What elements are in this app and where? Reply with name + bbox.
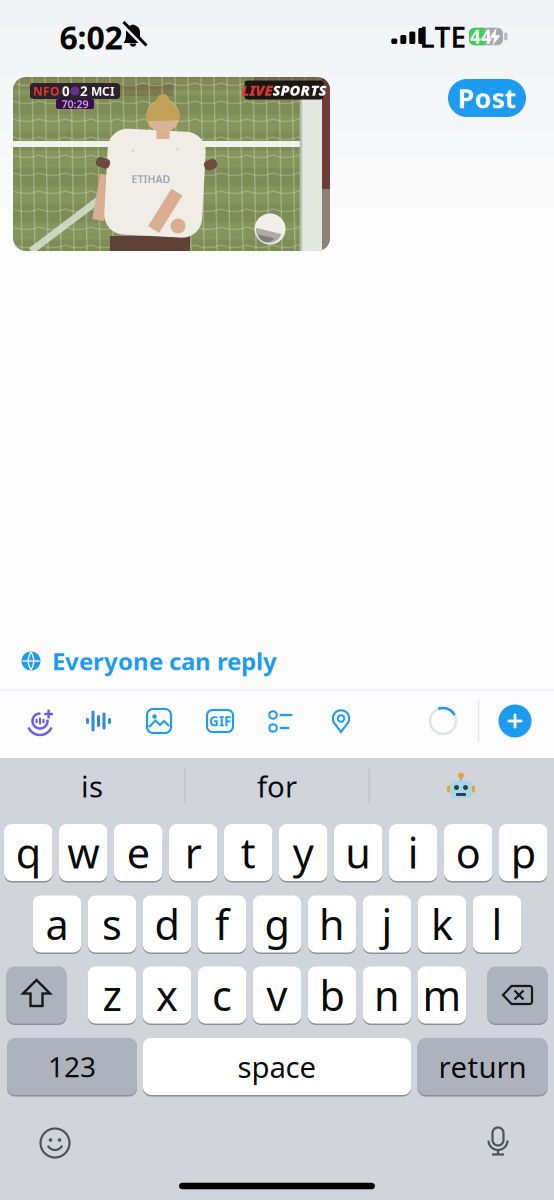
staticText: a <box>45 897 68 951</box>
staticText: NFO <box>33 83 59 99</box>
button[interactable]: b <box>0 0 554 1200</box>
button[interactable] <box>0 0 554 1200</box>
button[interactable]: g <box>0 0 554 1200</box>
staticText: Post <box>457 80 516 116</box>
button[interactable]: Post <box>448 79 526 117</box>
staticText: 2 <box>80 82 88 100</box>
button[interactable]: p <box>0 0 554 1200</box>
button[interactable]: c <box>0 0 554 1200</box>
staticText: e <box>127 825 150 880</box>
staticText: r <box>185 825 202 880</box>
button[interactable]: u <box>0 0 554 1200</box>
staticText: LTE <box>419 18 466 56</box>
button[interactable] <box>85 708 111 734</box>
button[interactable]: a <box>0 0 554 1200</box>
button[interactable] <box>0 0 554 1200</box>
button[interactable]: d <box>0 0 554 1200</box>
staticText: u <box>345 825 371 880</box>
staticText: return <box>438 1047 526 1086</box>
staticText: 44 <box>470 24 492 49</box>
staticText: MCI <box>91 83 115 99</box>
button[interactable] <box>26 706 54 735</box>
button[interactable]: o <box>0 0 554 1200</box>
staticText: d <box>154 897 179 951</box>
staticText: c <box>212 968 232 1022</box>
button[interactable]: k <box>0 0 554 1200</box>
button[interactable]: GIF <box>207 708 233 734</box>
button[interactable] <box>268 708 294 734</box>
staticText: f <box>215 897 229 951</box>
button[interactable]: 123 <box>0 0 554 1200</box>
button[interactable]: h <box>0 0 554 1200</box>
staticText: p <box>511 825 536 880</box>
button[interactable] <box>0 0 554 1200</box>
staticText: l <box>491 897 502 951</box>
staticText: ETIHAD <box>131 172 170 186</box>
staticText: q <box>16 825 41 880</box>
staticText: m <box>422 968 461 1022</box>
staticText: for <box>257 766 297 805</box>
button[interactable]: for <box>0 0 554 1200</box>
staticText: j <box>381 897 392 951</box>
staticText: 0 <box>62 82 70 100</box>
button[interactable]: x <box>0 0 554 1200</box>
staticText: o <box>456 825 481 880</box>
staticText: 123 <box>48 1048 96 1085</box>
staticText: z <box>102 968 121 1022</box>
staticText: LIVE <box>241 80 272 100</box>
button[interactable]: Everyone can reply <box>0 0 554 1200</box>
button[interactable]: space <box>0 0 554 1200</box>
staticText: SPORTS <box>272 80 326 100</box>
staticText: t <box>241 825 256 880</box>
button[interactable]: z <box>0 0 554 1200</box>
staticText: 70:29 <box>61 97 88 111</box>
button[interactable]: j <box>0 0 554 1200</box>
staticText: 6:02 <box>59 16 122 58</box>
staticText: i <box>408 825 419 880</box>
staticText: b <box>319 968 344 1022</box>
staticText: n <box>374 968 400 1022</box>
button[interactable]: f <box>0 0 554 1200</box>
button[interactable]: t <box>0 0 554 1200</box>
staticText: GIF <box>209 712 231 730</box>
staticText: w <box>67 825 99 880</box>
button[interactable]: w <box>0 0 554 1200</box>
button[interactable]: return <box>0 0 554 1200</box>
staticText: k <box>431 897 453 951</box>
button[interactable]: v <box>0 0 554 1200</box>
button[interactable]: s <box>0 0 554 1200</box>
button[interactable] <box>146 708 172 734</box>
staticText: s <box>102 897 122 951</box>
button[interactable]: is <box>0 0 554 1200</box>
button[interactable]: m <box>0 0 554 1200</box>
button[interactable]: i <box>0 0 554 1200</box>
staticText: y <box>293 825 314 880</box>
button[interactable] <box>0 0 554 1200</box>
button[interactable]: q <box>0 0 554 1200</box>
button[interactable] <box>328 708 354 734</box>
button[interactable]: r <box>0 0 554 1200</box>
button[interactable]: n <box>0 0 554 1200</box>
button[interactable]: y <box>0 0 554 1200</box>
staticText: is <box>81 766 103 805</box>
staticText: space <box>237 1047 316 1086</box>
staticText: Everyone can reply <box>52 645 277 677</box>
button[interactable] <box>498 704 531 737</box>
staticText: v <box>266 968 287 1022</box>
button[interactable]: e <box>0 0 554 1200</box>
staticText: g <box>264 897 289 951</box>
button[interactable]: l <box>0 0 554 1200</box>
staticText: h <box>319 897 345 951</box>
button[interactable]: ETIHAD <box>0 0 554 1200</box>
staticText: x <box>156 968 178 1022</box>
button[interactable] <box>0 0 554 1200</box>
